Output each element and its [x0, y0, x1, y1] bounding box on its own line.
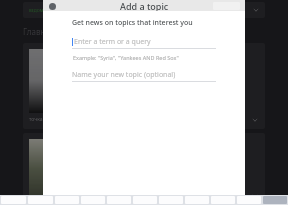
button[interactable]: точка [23, 43, 265, 129]
staticText: Главное [23, 26, 55, 37]
staticText: ВЕДОМОСТИ [29, 8, 55, 13]
staticText: Add a topic [120, 0, 169, 11]
button[interactable]: Name your new topic (optional) [72, 69, 216, 81]
button[interactable]: Expand [251, 192, 259, 200]
button[interactable]: Expand [251, 116, 259, 124]
staticText: Enter a term or a query [74, 37, 151, 47]
button[interactable]: ВЕДОМОСТИ [23, 2, 265, 18]
button[interactable]: Бурят [23, 133, 265, 205]
staticText: точка [29, 116, 43, 123]
button[interactable]: Enter a term or a query [72, 36, 216, 48]
staticText: Name your new topic (optional) [72, 70, 176, 80]
button[interactable]: Close [47, 1, 57, 11]
staticText: Example: "Syria", "Yankees AND Red Sox" [73, 54, 179, 61]
staticText: Get news on topics that interest you [72, 18, 193, 28]
